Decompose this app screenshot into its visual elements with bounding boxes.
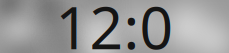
staticText: 12:0 [55,0,173,53]
